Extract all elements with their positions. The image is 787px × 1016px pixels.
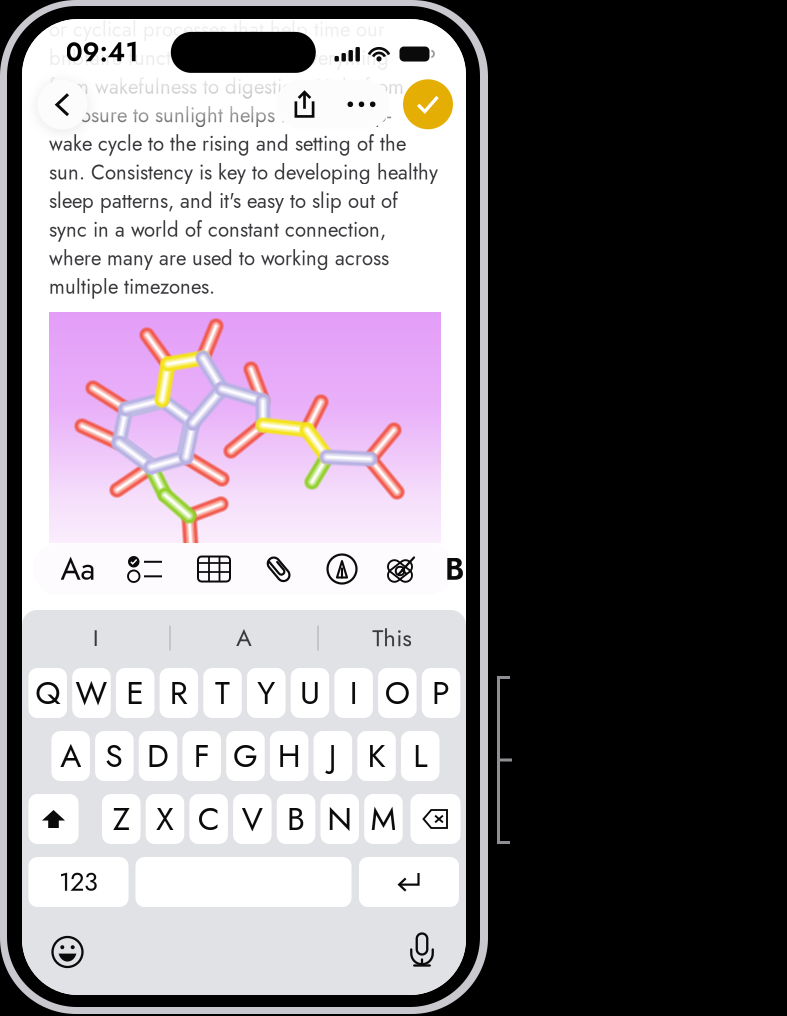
staticText: A bbox=[236, 621, 252, 655]
button[interactable]: A bbox=[51, 731, 90, 781]
staticText: J bbox=[329, 733, 337, 779]
staticText: H bbox=[278, 733, 301, 779]
staticText: T bbox=[215, 670, 230, 716]
staticText: V bbox=[242, 796, 263, 842]
staticText: 09:41 bbox=[65, 33, 138, 71]
staticText: B bbox=[445, 547, 464, 591]
button[interactable]: E bbox=[116, 668, 154, 718]
button[interactable]: Markup bbox=[316, 543, 368, 595]
button[interactable]: D bbox=[139, 731, 177, 781]
staticText: Z bbox=[113, 796, 130, 842]
button[interactable]: T bbox=[203, 668, 242, 718]
button[interactable]: Share bbox=[276, 80, 333, 129]
staticText: I bbox=[350, 670, 358, 716]
button[interactable]: Emoji bbox=[44, 929, 90, 975]
button[interactable]: Table bbox=[188, 543, 240, 595]
button[interactable]: Effects bbox=[376, 543, 428, 595]
staticText: bnbfaire functions, affecting everything bbox=[49, 43, 389, 73]
button[interactable]: C bbox=[189, 794, 228, 844]
staticText: sun. Consistency is key to developing he… bbox=[49, 158, 438, 187]
staticText: multiple timezones. bbox=[49, 272, 215, 301]
staticText: X bbox=[156, 796, 174, 842]
button[interactable]: Z bbox=[102, 794, 140, 844]
button[interactable]: U bbox=[291, 668, 329, 718]
button[interactable]: Done bbox=[403, 79, 453, 129]
staticText: where many are used to working across bbox=[49, 244, 389, 273]
staticText: W bbox=[75, 670, 107, 716]
staticText: from wakefulness to digestion. Light fro… bbox=[49, 72, 404, 101]
button[interactable]: Attach bbox=[253, 543, 305, 595]
button[interactable]: Back bbox=[37, 80, 87, 130]
staticText: exposure to sunlight helps tie this slee… bbox=[49, 101, 391, 130]
button[interactable]: L bbox=[401, 731, 439, 781]
button[interactable]: B bbox=[277, 794, 315, 844]
button[interactable]: Checklist bbox=[119, 543, 171, 595]
staticText: I bbox=[93, 621, 99, 655]
button[interactable]: G bbox=[226, 731, 265, 781]
staticText: This bbox=[372, 621, 412, 655]
staticText: O bbox=[385, 670, 410, 716]
staticText: L bbox=[413, 733, 427, 779]
staticText: D bbox=[147, 733, 169, 779]
staticText: B bbox=[287, 796, 305, 842]
button[interactable]: More bbox=[333, 80, 390, 129]
staticText: E bbox=[126, 670, 144, 716]
staticText: Aa bbox=[60, 547, 95, 591]
button[interactable]: K bbox=[357, 731, 396, 781]
staticText: K bbox=[367, 733, 385, 779]
button[interactable]: I bbox=[334, 668, 373, 718]
staticText: sync in a world of constant connection, bbox=[49, 215, 386, 244]
button[interactable]: R bbox=[160, 668, 198, 718]
staticText: S bbox=[105, 733, 123, 779]
button[interactable]: Y bbox=[247, 668, 285, 718]
button[interactable]: Return bbox=[359, 857, 459, 907]
button[interactable]: H bbox=[270, 731, 308, 781]
button[interactable]: Q bbox=[28, 668, 67, 718]
staticText: Y bbox=[257, 670, 275, 716]
staticText: sleep patterns, and it's easy to slip ou… bbox=[49, 186, 398, 216]
button[interactable]: V bbox=[233, 794, 272, 844]
button[interactable]: F bbox=[182, 731, 221, 781]
button[interactable]: N bbox=[320, 794, 359, 844]
staticText: F bbox=[194, 733, 210, 779]
staticText: Q bbox=[35, 670, 60, 716]
button[interactable]: O bbox=[378, 668, 417, 718]
button[interactable]: Shift bbox=[28, 794, 78, 844]
button[interactable]: Dictate bbox=[399, 927, 445, 973]
staticText: G bbox=[233, 733, 258, 779]
button[interactable]: J bbox=[314, 731, 352, 781]
staticText: 123 bbox=[59, 864, 98, 900]
button[interactable]: M bbox=[364, 794, 403, 844]
button[interactable]: P bbox=[422, 668, 460, 718]
staticText: wake cycle to the rising and setting of … bbox=[49, 129, 406, 158]
staticText: U bbox=[300, 670, 320, 716]
button[interactable]: Numbers bbox=[28, 857, 128, 907]
staticText: N bbox=[327, 796, 352, 842]
button[interactable]: X bbox=[146, 794, 184, 844]
staticText: or cyclical processes that help time our bbox=[49, 15, 385, 44]
staticText: R bbox=[170, 670, 188, 716]
button[interactable]: Delete bbox=[410, 794, 460, 844]
staticText: P bbox=[432, 670, 450, 716]
button[interactable]: S bbox=[95, 731, 134, 781]
staticText: C bbox=[198, 796, 220, 842]
staticText: M bbox=[370, 796, 396, 842]
staticText: A bbox=[60, 733, 81, 779]
button[interactable]: Format bbox=[52, 543, 104, 595]
button[interactable]: W bbox=[72, 668, 111, 718]
